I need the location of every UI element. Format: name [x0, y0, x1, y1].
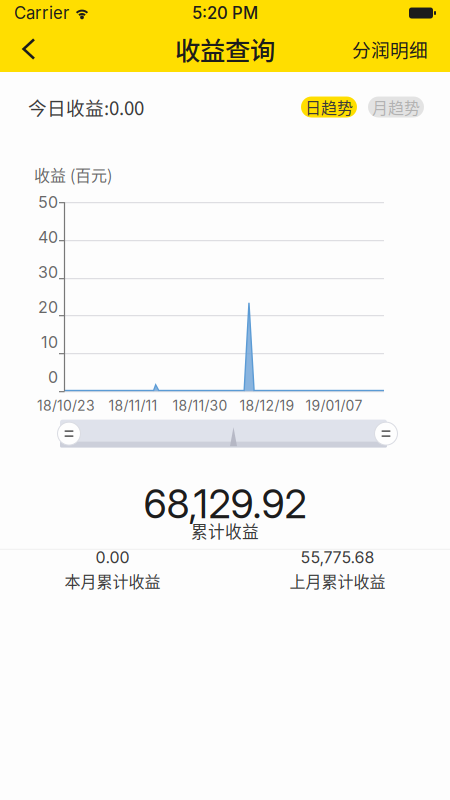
staticText: 68,129.92: [143, 480, 306, 528]
staticText: 累计收益: [191, 519, 259, 543]
staticText: 收益 (百元): [34, 163, 112, 186]
staticText: 月趋势: [372, 95, 420, 119]
staticText: 分润明细: [352, 35, 428, 62]
button[interactable]: Range end: [374, 422, 398, 446]
button[interactable]: 月趋势: [368, 96, 424, 117]
staticText: 5:20 PM: [192, 3, 258, 23]
staticText: 40: [38, 227, 58, 247]
staticText: 20: [38, 297, 58, 317]
staticText: 19/01/07: [305, 397, 362, 414]
staticText: 18/10/23: [37, 397, 95, 414]
staticText: 今日收益:0.00: [28, 93, 144, 120]
staticText: 50: [38, 192, 58, 212]
staticText: 30: [38, 262, 58, 282]
button[interactable]: 分润明细: [342, 26, 428, 72]
staticText: 0: [48, 367, 58, 387]
staticText: 18/12/19: [239, 397, 294, 414]
button[interactable]: Range start: [57, 422, 81, 446]
staticText: Carrier: [14, 3, 69, 23]
button[interactable]: Back: [22, 26, 66, 72]
staticText: 18/11/30: [172, 397, 227, 414]
staticText: 收益查询: [175, 31, 275, 67]
staticText: 0.00: [95, 548, 129, 567]
staticText: 上月累计收益: [289, 569, 385, 592]
staticText: 10: [41, 332, 58, 352]
staticText: 55,775.68: [300, 548, 374, 567]
staticText: 18/11/11: [108, 397, 157, 414]
staticText: 日趋势: [305, 95, 353, 119]
staticText: 本月累计收益: [64, 569, 160, 592]
button[interactable]: 日趋势: [301, 96, 357, 117]
